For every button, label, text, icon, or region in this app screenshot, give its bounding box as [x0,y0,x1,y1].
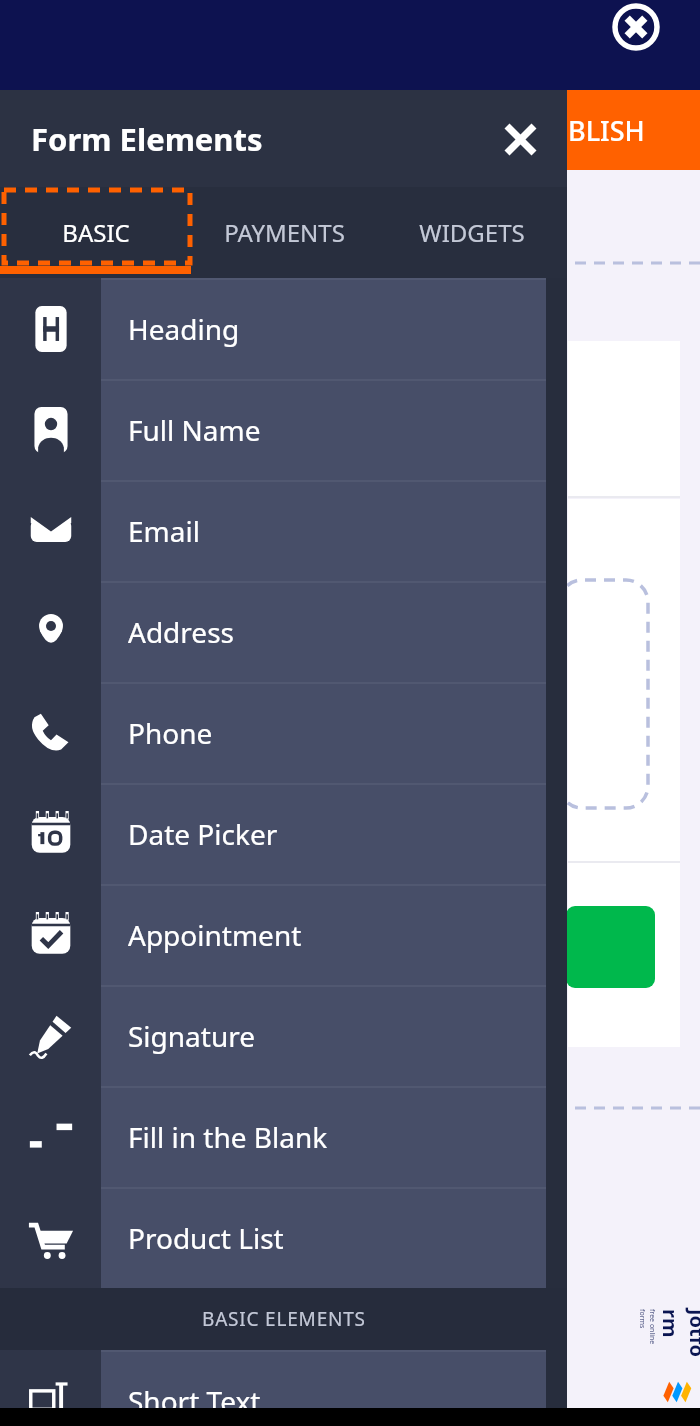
staticText: BLISH [568,112,645,149]
staticText: Form Elements [31,118,263,160]
staticText: Date Picker [128,815,278,853]
staticText: Signature [128,1017,256,1055]
staticText: Email [128,512,200,550]
button[interactable]: Email [0,480,567,581]
staticText: Phone [128,714,213,752]
button[interactable]: WIDGETS [376,187,567,278]
staticText: Short Text [128,1382,261,1420]
staticText: BASIC ELEMENTS [202,1306,366,1332]
staticText: Appointment [128,916,302,954]
button[interactable]: Heading [0,278,567,379]
button[interactable]: Address [0,581,567,682]
button[interactable]: Close [609,0,663,54]
button[interactable]: Date Picker [0,783,567,884]
staticText: Full Name [128,411,261,449]
staticText: PAYMENTS [224,216,345,249]
staticText: WIDGETS [419,216,525,249]
button[interactable]: BLISH [566,90,700,170]
button[interactable]: Full Name [0,379,567,480]
button[interactable]: BASIC [0,187,192,278]
staticText: Fill in the Blank [128,1118,328,1156]
staticText: BASIC [62,216,130,249]
button[interactable]: Signature [0,985,567,1086]
staticText: Jotform [657,1309,700,1361]
staticText: free online forms [637,1309,657,1361]
button[interactable]: PAYMENTS [192,187,376,278]
button[interactable]: Fill in the Blank [0,1086,567,1187]
button[interactable]: Phone [0,682,567,783]
staticText: Address [128,613,234,651]
button[interactable]: Appointment [0,884,567,985]
staticText: Heading [128,310,240,348]
button[interactable]: Close drawer [495,114,545,164]
button[interactable]: Product List [0,1187,567,1288]
staticText: Product List [128,1219,284,1257]
button[interactable]: Short Text [0,1350,567,1426]
